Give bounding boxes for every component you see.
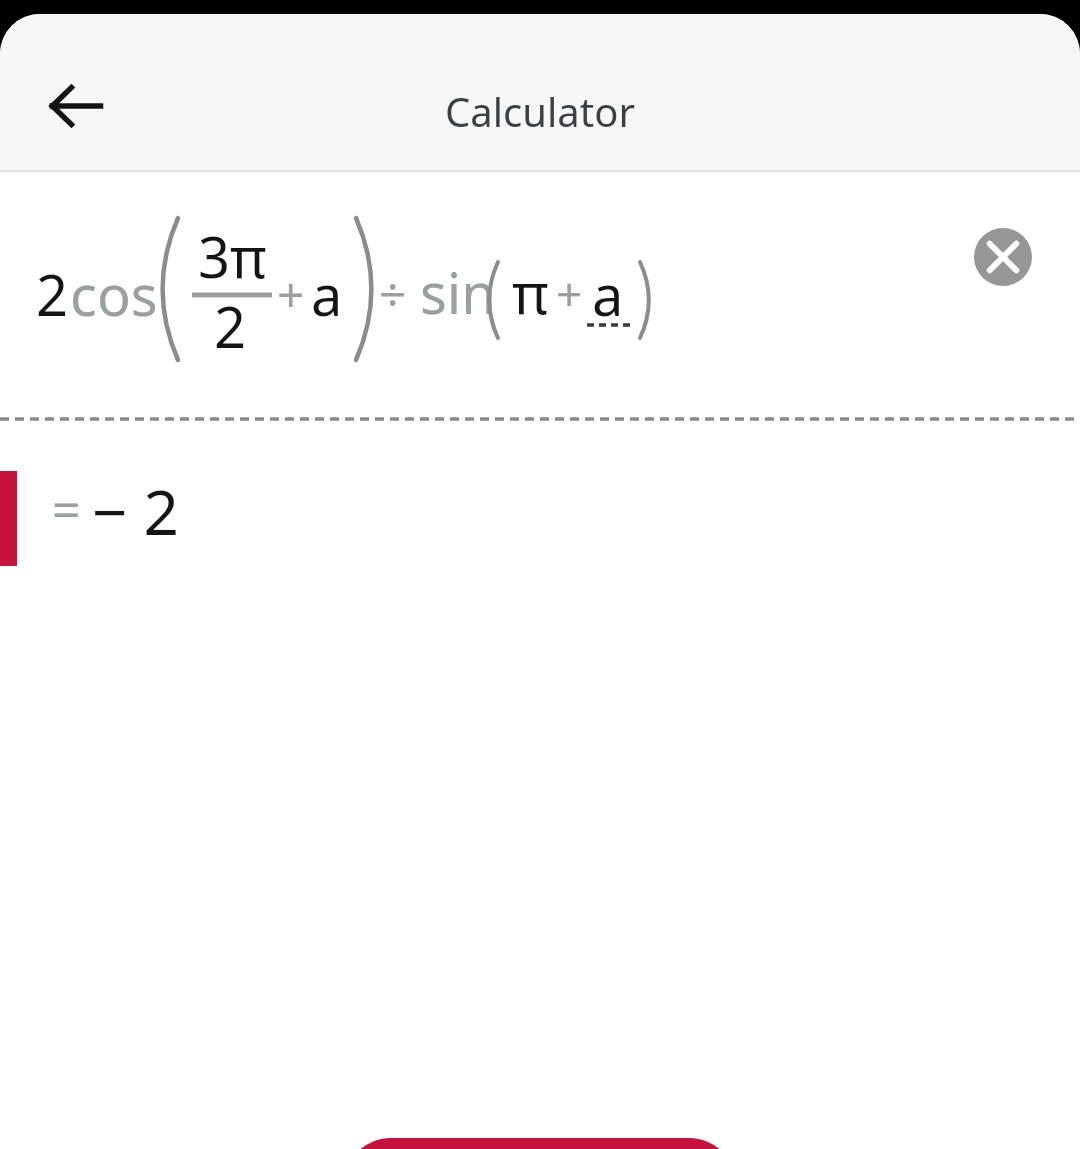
button[interactable]: Solve — [343, 1138, 737, 1149]
staticText: Calculator — [0, 84, 1080, 138]
button[interactable] — [0, 200, 1080, 390]
button[interactable]: Back — [37, 66, 117, 146]
button[interactable]: Clear expression — [955, 209, 1051, 305]
